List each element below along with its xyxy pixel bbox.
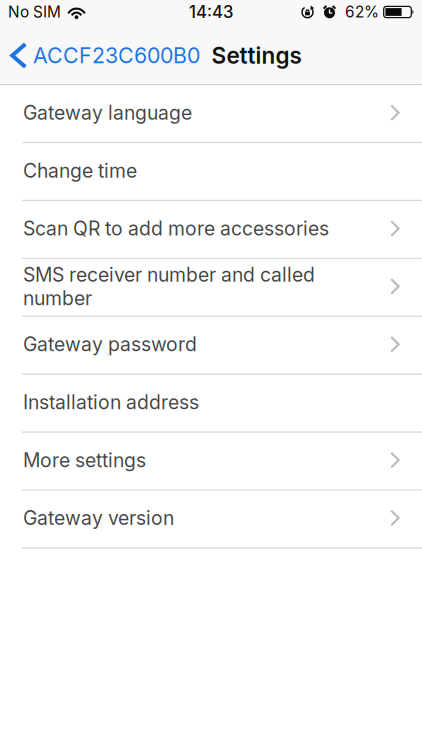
staticText: Gateway password [23,333,197,356]
button[interactable]: Change time [0,143,422,201]
button[interactable]: Back [10,42,200,68]
staticText: Gateway version [23,506,174,530]
button[interactable]: More settings [0,433,422,491]
staticText: SMS receiver number and called [23,263,315,286]
staticText: 62% [345,3,379,21]
button[interactable]: SMS receiver number and called [0,259,422,317]
staticText: Installation address [23,390,199,414]
staticText: ACCF23C600B0 [33,43,200,68]
button[interactable]: Gateway password [0,317,422,375]
button[interactable]: Scan QR to add more accessories [0,201,422,259]
staticText: Scan QR to add more accessories [23,217,329,240]
button[interactable]: Gateway language [0,85,422,143]
staticText: No SIM [8,3,61,21]
staticText: More settings [23,448,146,472]
staticText: 14:43 [189,2,233,22]
staticText: Gateway language [23,101,192,124]
button[interactable]: Gateway version [0,491,422,549]
button[interactable]: Installation address [0,375,422,433]
staticText: number [23,286,92,310]
staticText: Change time [23,159,137,182]
staticText: Settings [211,42,301,69]
